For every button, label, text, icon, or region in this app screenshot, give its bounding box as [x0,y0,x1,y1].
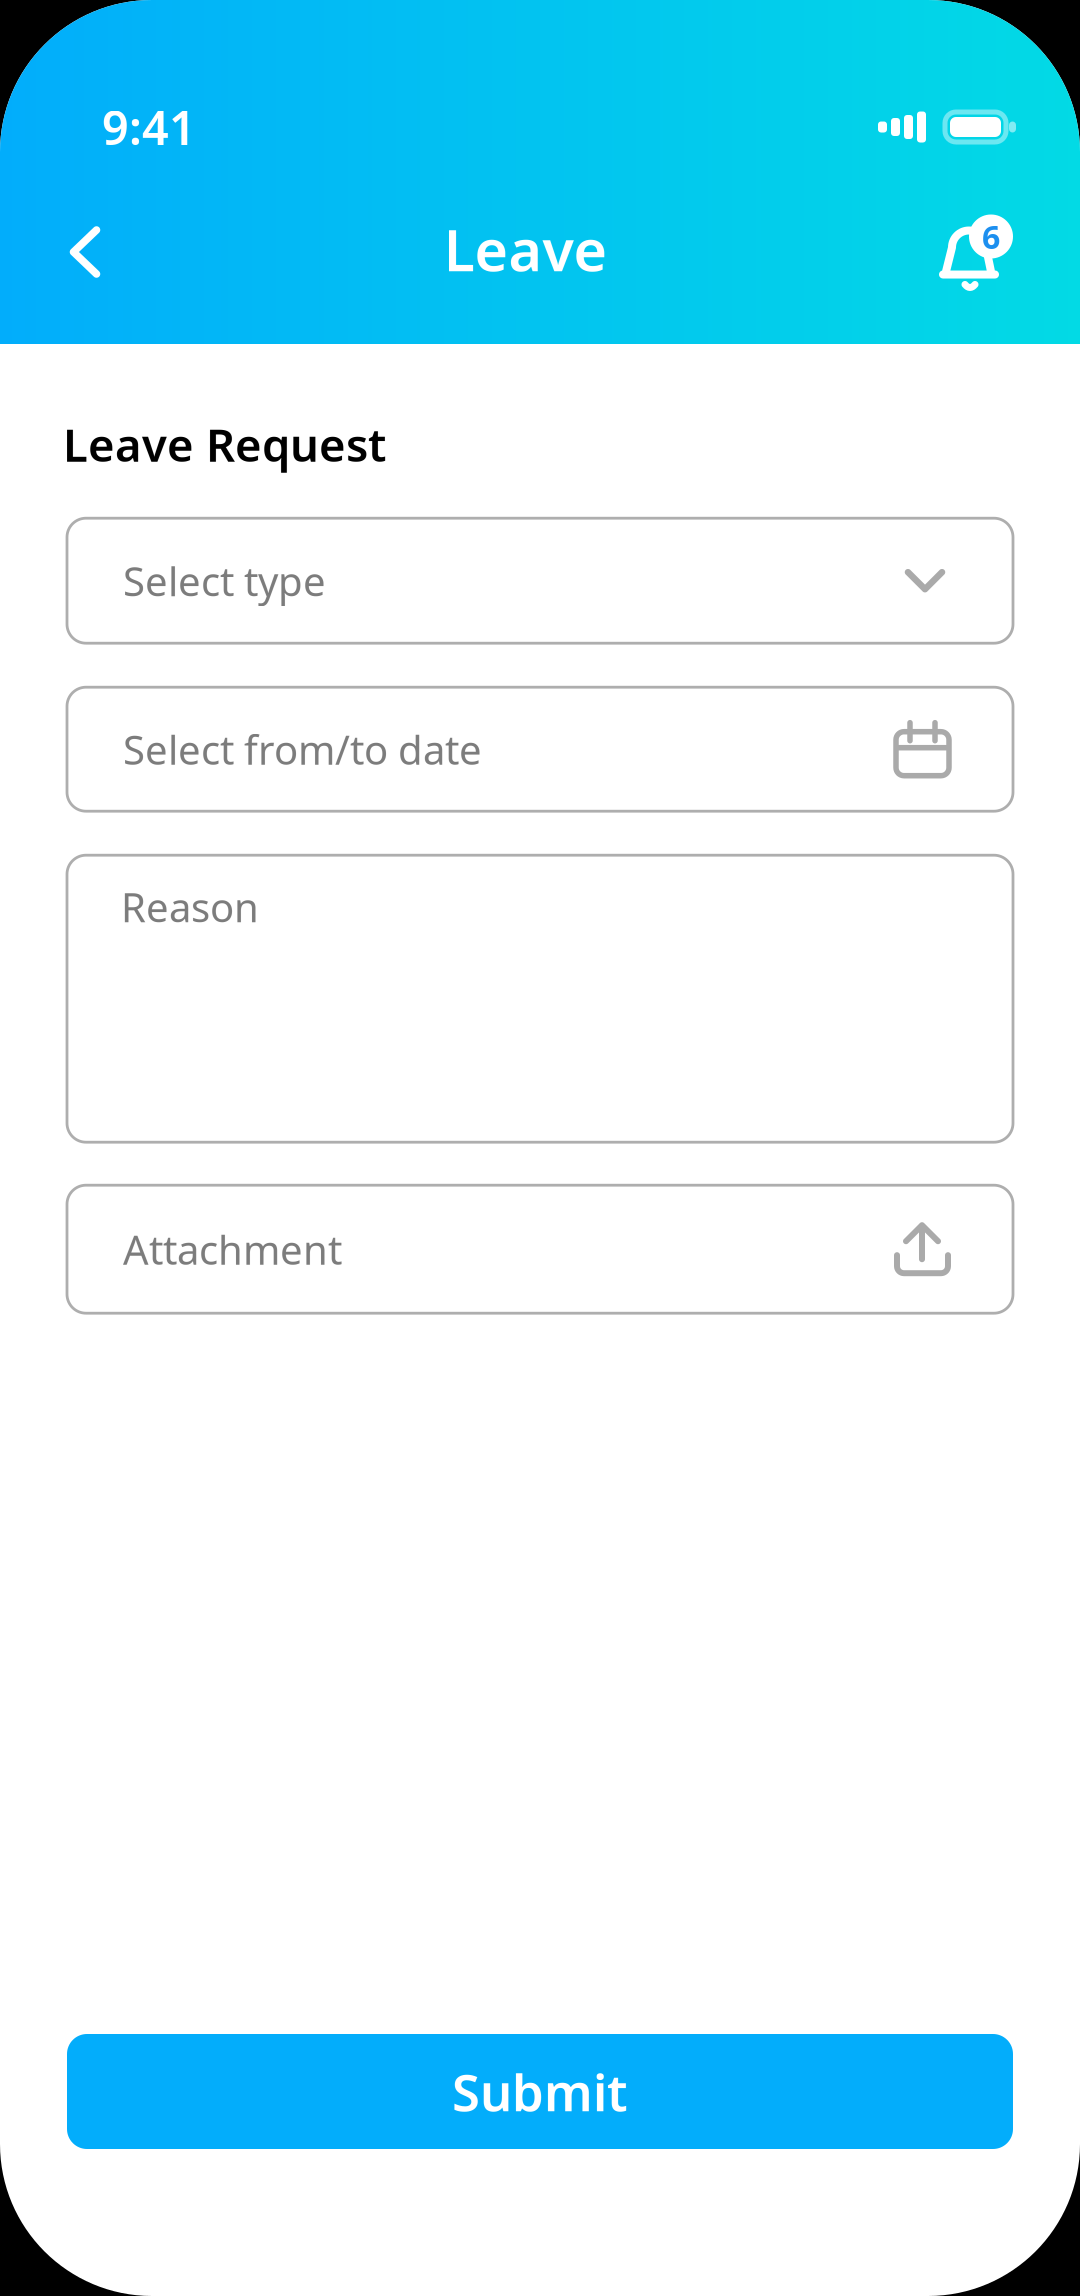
staticText: Reason [121,880,259,933]
staticText: Submit [452,2058,628,2125]
button[interactable]: Submit [67,2034,1013,2149]
button[interactable]: Select from/to date [67,687,1013,811]
staticText: 6 [982,215,1000,258]
staticText: Select from/to date [123,723,482,776]
button[interactable]: Notifications [928,207,1024,303]
staticText: Attachment [123,1223,342,1276]
staticText: Leave Request [63,414,386,474]
button[interactable]: Select type [67,518,1013,643]
staticText: Leave [443,211,607,287]
staticText: 9:41 [102,96,196,158]
button[interactable]: Back [39,207,135,303]
staticText: Select type [123,554,326,607]
button[interactable]: Reason [67,855,1013,1142]
button[interactable]: Attachment [67,1185,1013,1313]
